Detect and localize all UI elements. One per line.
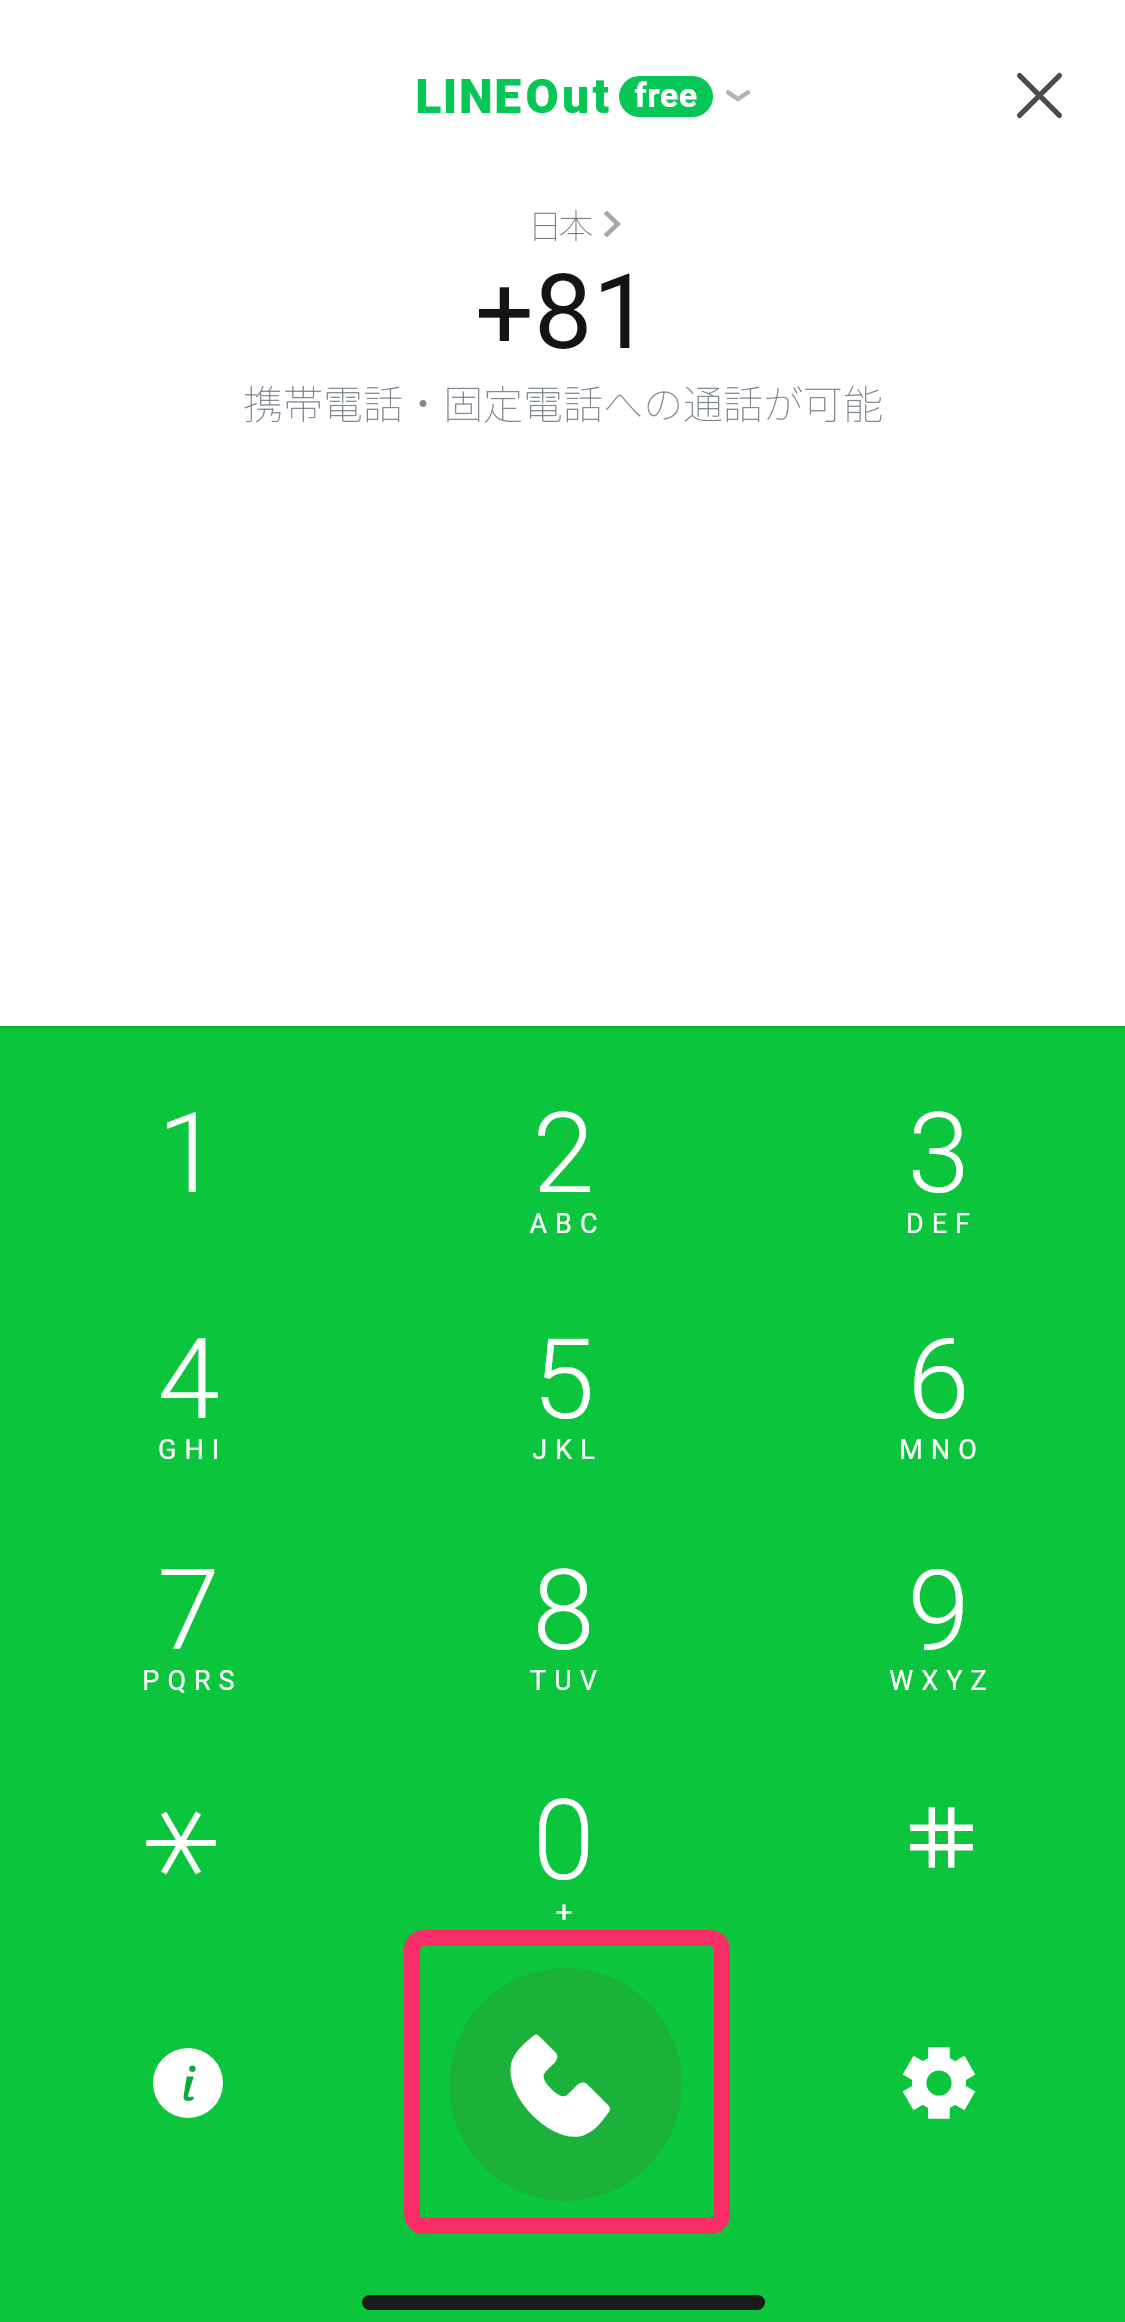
button[interactable]: Pound xyxy=(816,1742,1066,1932)
staticText: MNO xyxy=(899,1434,985,1466)
button[interactable]: Star xyxy=(56,1748,306,1938)
staticText: 5 xyxy=(532,1314,595,1445)
button[interactable]: 3 xyxy=(813,1088,1063,1278)
staticText: free xyxy=(634,76,698,115)
button[interactable]: Information xyxy=(113,2008,263,2158)
staticText: 0 xyxy=(532,1775,595,1906)
staticText: 9 xyxy=(907,1545,970,1676)
button[interactable]: 4 xyxy=(63,1314,313,1504)
staticText: +81 xyxy=(475,252,651,374)
staticText: 8 xyxy=(532,1545,595,1676)
staticText: 6 xyxy=(907,1314,970,1445)
staticText: PQRS xyxy=(142,1665,243,1697)
button[interactable]: 0 xyxy=(438,1775,688,1965)
staticText: TUV xyxy=(530,1665,605,1697)
button[interactable]: Call xyxy=(404,1930,730,2234)
button[interactable]: 日本 xyxy=(514,198,612,249)
staticText: 7 xyxy=(157,1545,220,1676)
staticText: ABC xyxy=(529,1208,606,1240)
button[interactable]: LINE xyxy=(415,66,753,126)
button[interactable]: Settings xyxy=(864,2008,1014,2158)
staticText: 4 xyxy=(157,1314,220,1445)
staticText: WXYZ xyxy=(889,1665,995,1697)
staticText: 携帯電話・固定電話への通話が可能 xyxy=(243,373,883,431)
staticText: 3 xyxy=(907,1088,970,1219)
button[interactable]: 7 xyxy=(63,1545,313,1735)
staticText: 1 xyxy=(157,1088,220,1219)
staticText: DEF xyxy=(906,1208,978,1240)
staticText: JKL xyxy=(532,1434,603,1466)
staticText: 2 xyxy=(532,1088,595,1219)
button[interactable]: 6 xyxy=(813,1314,1063,1504)
staticText: LINE xyxy=(415,68,523,124)
button[interactable]: 2 xyxy=(438,1088,688,1278)
staticText: GHI xyxy=(158,1434,227,1466)
staticText: Out xyxy=(525,68,613,124)
staticText: + xyxy=(555,1894,573,1929)
button[interactable]: 8 xyxy=(438,1545,688,1735)
button[interactable]: 5 xyxy=(438,1314,688,1504)
staticText: 日本 xyxy=(527,198,590,249)
button[interactable]: 1 xyxy=(63,1088,313,1278)
button[interactable]: Close xyxy=(984,40,1094,150)
button[interactable]: 9 xyxy=(813,1545,1063,1735)
